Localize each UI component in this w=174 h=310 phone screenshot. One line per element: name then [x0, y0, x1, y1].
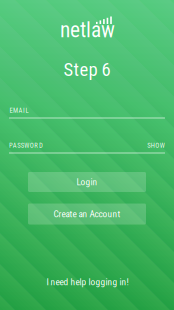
staticText: netlaw — [60, 17, 115, 42]
staticText: SHOW — [147, 142, 165, 149]
button[interactable]: Create an Account — [28, 203, 146, 224]
staticText: Step 6 — [63, 59, 110, 80]
staticText: EMAIL — [9, 107, 29, 114]
staticText: Login — [76, 176, 97, 187]
staticText: Create an Account — [53, 208, 120, 219]
button[interactable]: SHOW — [147, 142, 165, 149]
button[interactable]: Login — [28, 172, 146, 192]
button[interactable]: I need help logging in! — [46, 276, 128, 287]
staticText: PASSWORD — [9, 142, 43, 149]
staticText: I need help logging in! — [46, 276, 128, 287]
